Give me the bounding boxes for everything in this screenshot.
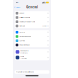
button[interactable]: Fonts [15,55,49,60]
staticText: AirDrop [19,31,25,33]
staticText: General [26,5,38,9]
staticText: Transfer or Reset iPhone [16,71,34,73]
staticText: AirPlay & Handoff [19,36,31,37]
staticText: English (US) [20,52,27,54]
staticText: Picture in Picture [19,44,30,46]
button[interactable]: Storage [15,24,49,28]
staticText: 63 GB [42,25,46,27]
button[interactable]: About [15,11,49,15]
button[interactable]: CarPlay [15,39,49,43]
staticText: Software Update [19,17,30,18]
button[interactable]: ‹ [14,5,20,9]
staticText: 12 installed [20,58,27,59]
staticText: About [19,12,23,14]
button[interactable]: AirDrop [15,30,49,34]
staticText: ‹ [14,5,15,9]
staticText: CarPlay [19,40,25,42]
button[interactable]: Software Update [15,15,49,19]
staticText: Storage [19,25,25,27]
button[interactable]: AirPlay & Handoff [15,34,49,38]
button[interactable]: AppleCare & Warranty [15,20,49,24]
button[interactable]: Transfer or Reset iPhone [15,70,49,74]
staticText: AppleCare & Warranty [19,21,35,23]
staticText: Fonts [20,56,24,57]
staticText: 9:41 [16,2,19,3]
staticText: Keyboard [20,50,28,52]
button[interactable]: Keyboard [15,49,49,55]
button[interactable]: Picture in Picture [15,43,49,47]
staticText: Settings [16,6,21,8]
